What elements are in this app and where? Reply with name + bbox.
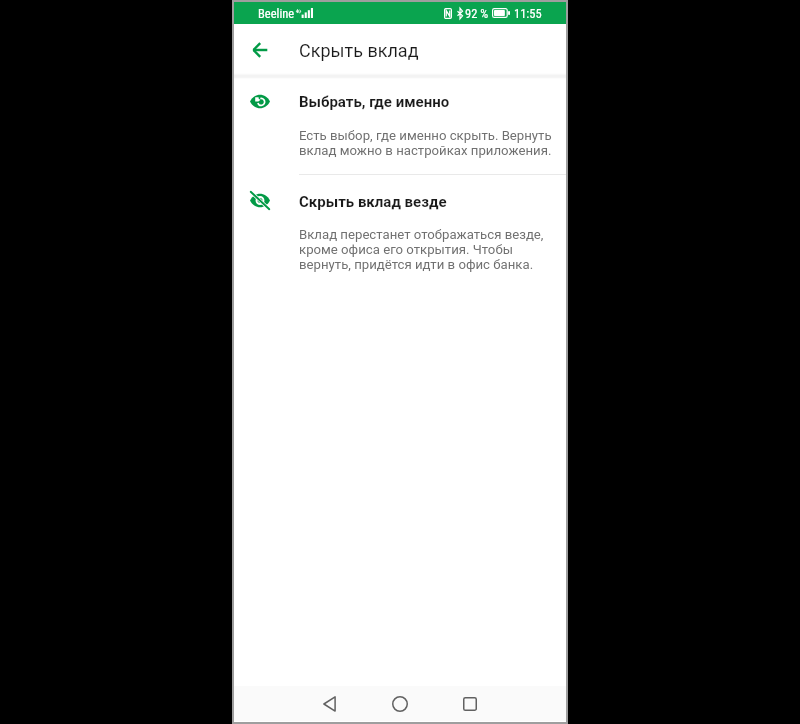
button[interactable]: Скрыть вклад везде (234, 175, 566, 290)
staticText: 11:55 (514, 6, 542, 21)
staticText: Скрыть вклад везде (299, 193, 447, 211)
button[interactable]: Выбрать, где именно (234, 75, 566, 175)
button[interactable]: Back (309, 686, 349, 721)
staticText: Вклад перестанет отображаться везде, кро… (299, 227, 555, 272)
button[interactable]: Home (380, 686, 420, 721)
staticText: Beeline (258, 6, 295, 21)
button[interactable]: Back (240, 29, 280, 69)
staticText: Есть выбор, где именно скрыть. Вернуть в… (299, 128, 561, 158)
staticText: 92 % (465, 6, 489, 21)
staticText: Выбрать, где именно (299, 93, 450, 111)
button[interactable]: Recent apps (450, 686, 490, 721)
staticText: Скрыть вклад (299, 40, 419, 61)
